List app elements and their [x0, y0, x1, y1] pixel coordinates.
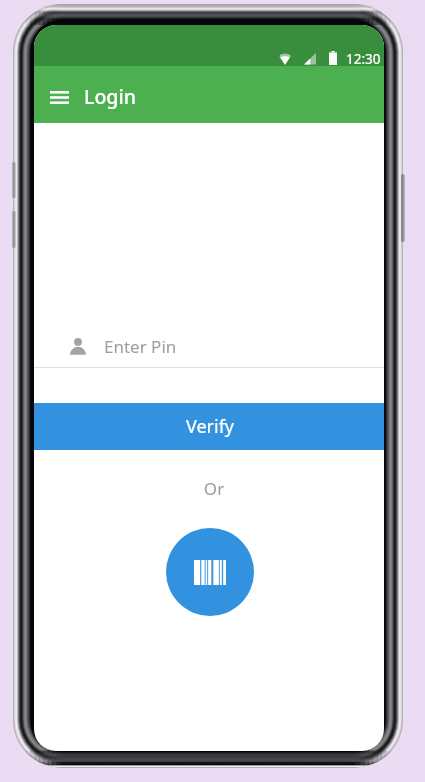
staticText: Login	[84, 83, 136, 110]
button[interactable]: Enter Pin	[34, 328, 384, 364]
staticText: Or	[39, 477, 384, 500]
button[interactable]: Verify	[34, 403, 384, 450]
staticText: Enter Pin	[104, 335, 177, 358]
staticText: Verify	[186, 414, 235, 439]
button[interactable]: Open navigation menu	[48, 86, 70, 108]
button[interactable]: Scan barcode	[166, 528, 254, 616]
staticText: 12:30	[346, 50, 381, 68]
